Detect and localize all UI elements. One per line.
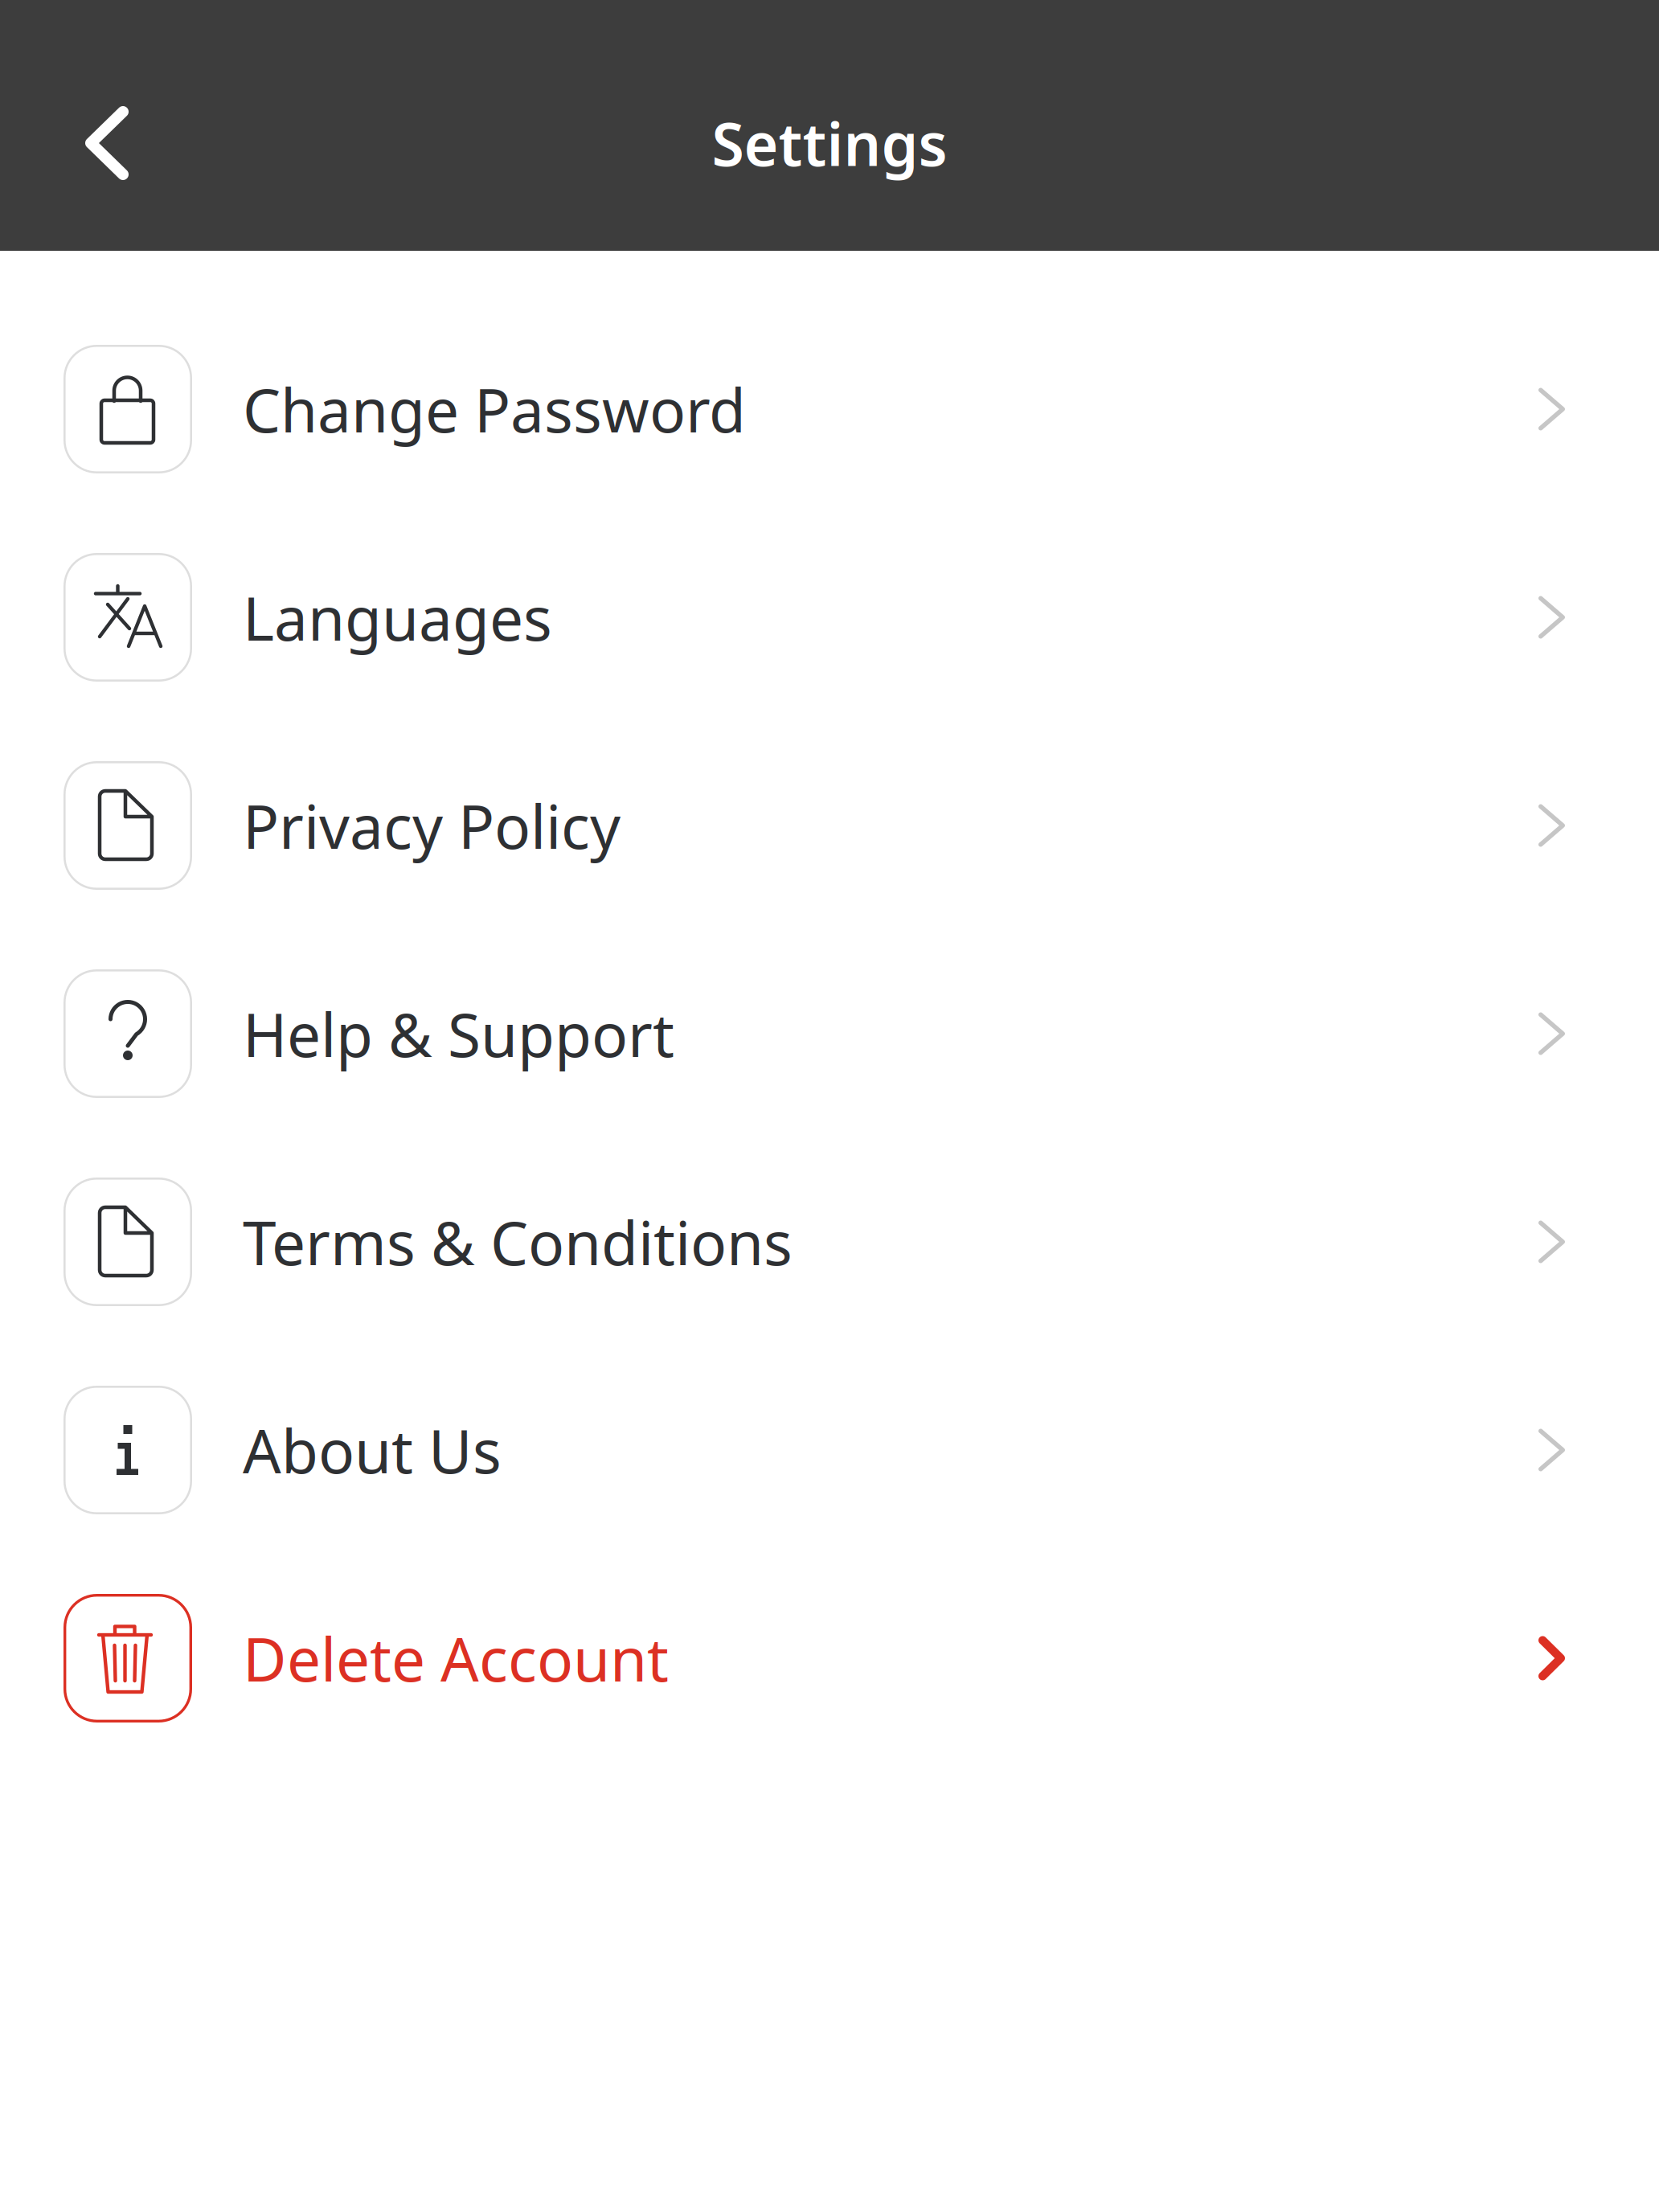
button[interactable]: Terms & Conditions: [0, 1138, 1659, 1346]
button[interactable]: Help & Support: [0, 930, 1659, 1138]
button[interactable]: About Us: [0, 1346, 1659, 1554]
staticText: Settings: [712, 104, 947, 182]
staticText: Help & Support: [243, 994, 674, 1074]
staticText: Privacy Policy: [243, 786, 621, 865]
staticText: Delete Account: [243, 1618, 669, 1698]
staticText: Terms & Conditions: [243, 1202, 793, 1282]
button[interactable]: Delete Account: [0, 1554, 1659, 1762]
button[interactable]: Change Password: [0, 305, 1659, 513]
button[interactable]: Back: [43, 79, 171, 207]
staticText: Change Password: [243, 369, 746, 449]
button[interactable]: Languages: [0, 513, 1659, 721]
button[interactable]: Privacy Policy: [0, 721, 1659, 930]
staticText: Languages: [243, 577, 552, 657]
staticText: About Us: [243, 1410, 502, 1490]
